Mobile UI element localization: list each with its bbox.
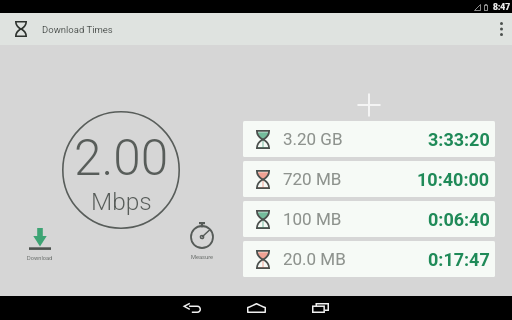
staticText: 8:47 (493, 2, 511, 12)
staticText: 720 MB (283, 169, 342, 189)
button[interactable]: Back (160, 296, 224, 320)
button[interactable]: Recent apps (288, 296, 352, 320)
button[interactable]: Home (224, 296, 288, 320)
staticText: Mbps (91, 187, 152, 216)
button[interactable]: 3.20 GB (243, 121, 495, 157)
staticText: 20.0 MB (283, 249, 346, 269)
staticText: 100 MB (283, 209, 342, 229)
button[interactable]: More options (490, 13, 512, 45)
staticText: 3:33:20 (428, 129, 490, 150)
button[interactable]: Download Times (0, 13, 42, 45)
staticText: Download Times (42, 24, 113, 35)
staticText: 0:06:40 (428, 209, 490, 230)
staticText: 3.20 GB (283, 129, 343, 149)
button[interactable]: Download (16, 227, 64, 262)
button[interactable]: 100 MB (243, 201, 495, 237)
button[interactable]: Add (353, 89, 384, 120)
button[interactable]: 720 MB (243, 161, 495, 197)
staticText: Measure (191, 254, 214, 261)
button[interactable]: 20.0 MB (243, 241, 495, 277)
staticText: 0:17:47 (428, 249, 490, 270)
staticText: 2.00 (74, 129, 169, 187)
staticText: 10:40:00 (417, 169, 490, 190)
button[interactable]: Measure (178, 222, 226, 261)
staticText: Download (27, 255, 53, 262)
